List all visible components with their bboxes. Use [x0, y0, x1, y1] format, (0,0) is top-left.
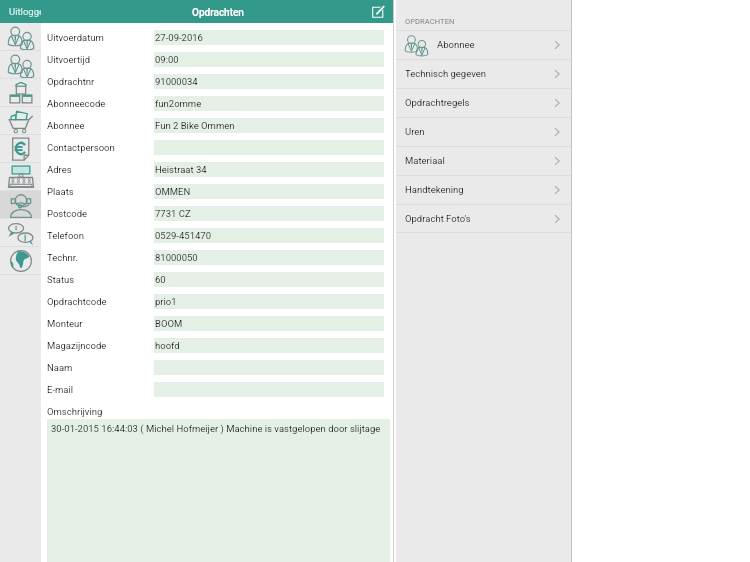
staticText: fun2omme: [155, 98, 202, 109]
button[interactable]: Opdrachtnr: [41, 74, 394, 96]
button[interactable]: Monteur: [41, 316, 394, 338]
staticText: Technisch gegeven: [405, 68, 486, 79]
button[interactable]: E-mail: [41, 382, 394, 404]
staticText: Abonnee: [47, 120, 85, 131]
button[interactable]: Status: [41, 272, 394, 294]
staticText: Adres: [47, 164, 72, 175]
staticText: OMMEN: [155, 186, 191, 197]
staticText: Opdrachtnr: [47, 76, 95, 87]
button[interactable]: Uitvoertijd: [41, 52, 394, 74]
button[interactable]: Uitloggen: [0, 0, 41, 23]
staticText: Uitvoertijd: [47, 54, 91, 65]
staticText: Heistraat 34: [155, 164, 207, 175]
button[interactable]: Opdrachten: [0, 191, 41, 219]
staticText: 0529-451470: [155, 230, 212, 241]
button[interactable]: Postcode: [41, 206, 394, 228]
staticText: E-mail: [47, 384, 74, 395]
button[interactable]: Bewerken: [370, 4, 386, 20]
staticText: Abonnee: [437, 39, 475, 50]
button[interactable]: Internet: [0, 247, 41, 275]
staticText: Contactpersoon: [47, 142, 115, 153]
staticText: Abonneecode: [47, 98, 106, 109]
button[interactable]: Facturen: [0, 135, 41, 163]
button[interactable]: Abonnee: [41, 118, 394, 140]
button[interactable]: Magazijncode: [41, 338, 394, 360]
staticText: Monteur: [47, 318, 83, 329]
button[interactable]: Opdrachtcode: [41, 294, 394, 316]
button[interactable]: Contactpersoon: [41, 140, 394, 162]
button[interactable]: Naam: [41, 360, 394, 382]
button[interactable]: Materiaal: [396, 146, 571, 175]
button[interactable]: Bestellingen: [0, 107, 41, 135]
staticText: Postcode: [47, 208, 88, 219]
staticText: Telefoon: [47, 230, 84, 241]
button[interactable]: Uren: [396, 117, 571, 146]
staticText: Uitvoerdatum: [47, 32, 104, 43]
staticText: Plaats: [47, 186, 74, 197]
staticText: 91000034: [155, 76, 198, 87]
staticText: BOOM: [155, 318, 183, 329]
button[interactable]: Plaats: [41, 184, 394, 206]
staticText: Opdrachtcode: [47, 296, 107, 307]
staticText: 60: [155, 274, 166, 285]
staticText: Opdrachtregels: [405, 97, 470, 108]
button[interactable]: Uitvoerdatum: [41, 30, 394, 52]
staticText: 09:00: [155, 54, 179, 65]
staticText: Omschrijving: [47, 406, 103, 417]
staticText: prio1: [155, 296, 177, 307]
staticText: 27-09-2016: [155, 32, 203, 43]
button[interactable]: Adres: [41, 162, 394, 184]
button[interactable]: Opdracht Foto's: [396, 204, 571, 233]
button[interactable]: Abonneecode: [41, 96, 394, 118]
button[interactable]: Telefoon: [41, 228, 394, 250]
staticText: hoofd: [155, 340, 180, 351]
button[interactable]: Technr.: [41, 250, 394, 272]
button[interactable]: Abonnee: [396, 30, 571, 59]
staticText: 30-01-2015 16:44:03 ( Michel Hofmeijer )…: [51, 423, 381, 434]
button[interactable]: Contactpersonen: [0, 51, 41, 79]
staticText: Technr.: [47, 252, 78, 263]
staticText: Uitloggen: [9, 6, 41, 17]
button[interactable]: Opdrachtregels: [396, 88, 571, 117]
button[interactable]: Artikelen: [0, 79, 41, 107]
staticText: Status: [47, 274, 75, 285]
staticText: OPDRACHTEN: [405, 17, 455, 26]
staticText: Handtekening: [405, 184, 464, 195]
button[interactable]: Kassa: [0, 163, 41, 191]
staticText: 7731 CZ: [155, 208, 191, 219]
staticText: Uren: [405, 126, 425, 137]
button[interactable]: Handtekening: [396, 175, 571, 204]
staticText: 81000050: [155, 252, 198, 263]
button[interactable]: Relaties: [0, 23, 41, 51]
staticText: Opdrachten: [192, 7, 244, 19]
staticText: Magazijncode: [47, 340, 107, 351]
staticText: Fun 2 Bike Ommen: [155, 120, 235, 131]
button[interactable]: 30-01-2015 16:44:03 ( Michel Hofmeijer )…: [47, 419, 390, 562]
staticText: Opdracht Foto's: [405, 213, 471, 224]
button[interactable]: Technisch gegeven: [396, 59, 571, 88]
staticText: Materiaal: [405, 155, 445, 166]
staticText: Naam: [47, 362, 73, 373]
button[interactable]: Meldingen: [0, 219, 41, 247]
